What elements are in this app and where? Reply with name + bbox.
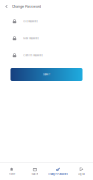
- staticText: Old Password: [23, 20, 37, 23]
- staticText: Wallet: [31, 172, 38, 175]
- button[interactable]: Back: [2, 0, 10, 13]
- button[interactable]: Wallet: [23, 163, 46, 179]
- button[interactable]: Logout: [70, 163, 93, 179]
- staticText: Change Password: [48, 172, 68, 175]
- button[interactable]: Home: [0, 163, 23, 179]
- staticText: SUBMIT: [43, 73, 50, 76]
- button[interactable]: SUBMIT: [10, 68, 82, 81]
- staticText: Home: [9, 172, 15, 175]
- staticText: New Password: [23, 37, 38, 40]
- staticText: Logout: [78, 172, 85, 175]
- staticText: Change Password: [12, 4, 41, 8]
- staticText: Confirm Password: [23, 54, 42, 57]
- button[interactable]: Change Password: [46, 163, 70, 179]
